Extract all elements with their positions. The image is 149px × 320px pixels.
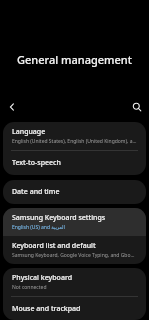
staticText: English (US) and العربية	[12, 224, 65, 231]
staticText: Samsung Keyboard, Google Voice Typing, a…	[12, 252, 137, 259]
button[interactable]: Text-to-speech	[3, 151, 146, 175]
staticText: Mouse and trackpad	[12, 304, 81, 313]
staticText: Physical keyboard	[12, 273, 73, 283]
button[interactable]: Keyboard list and default	[3, 236, 146, 264]
staticText: English (United States), English (United…	[12, 138, 137, 145]
button[interactable]: Samsung Keyboard settings	[3, 208, 146, 236]
button[interactable]: Language	[3, 122, 146, 150]
button[interactable]: Search	[128, 98, 146, 116]
staticText: Samsung Keyboard settings	[12, 213, 106, 223]
staticText: Language	[12, 127, 46, 137]
staticText: Not connected	[12, 284, 47, 291]
staticText: Text-to-speech	[12, 158, 61, 168]
staticText: Keyboard list and default	[12, 241, 96, 251]
button[interactable]: Mouse and trackpad	[3, 297, 146, 320]
staticText: Date and time	[12, 187, 60, 197]
staticText: General management	[17, 52, 132, 67]
button[interactable]: Physical keyboard	[3, 268, 146, 296]
button[interactable]: Date and time	[3, 180, 146, 204]
button[interactable]: Back	[3, 98, 21, 116]
